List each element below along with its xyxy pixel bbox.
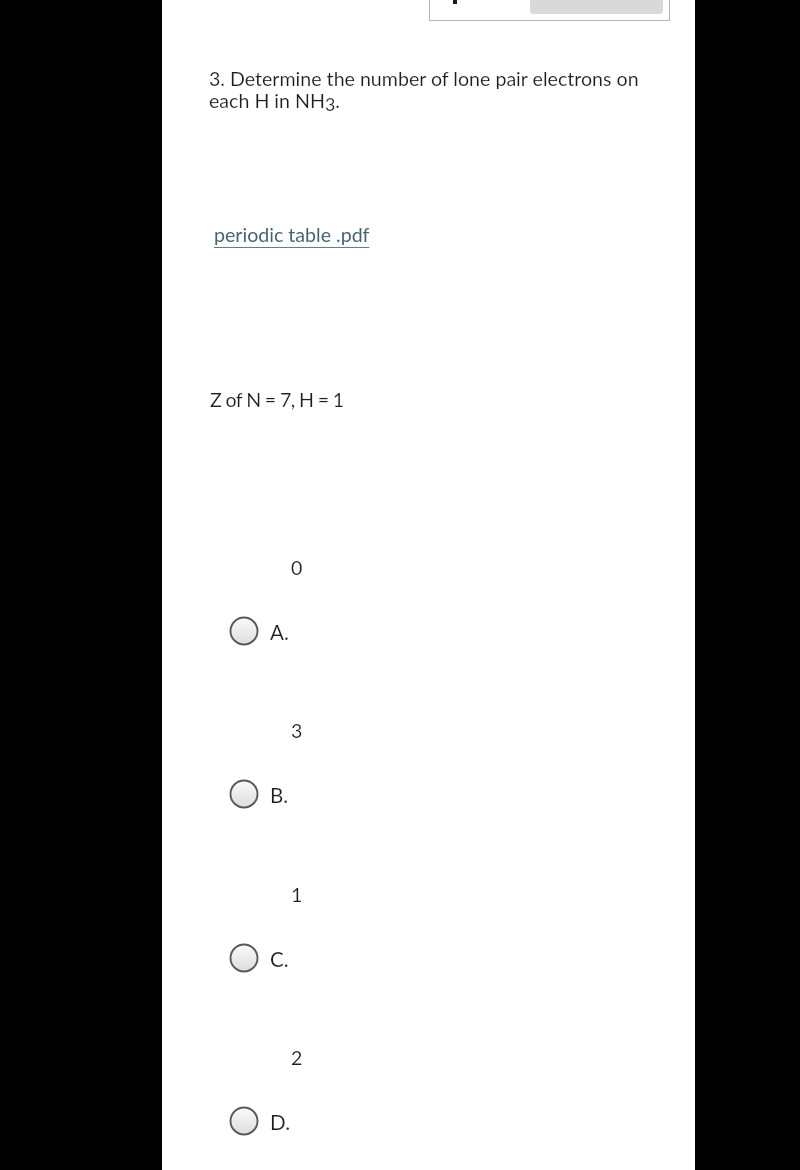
button[interactable]: Select answer: [229, 778, 301, 810]
other: Select answer: [229, 943, 259, 973]
staticText: A.: [270, 620, 289, 645]
button[interactable]: 3: [291, 719, 303, 743]
other: Select answer: [229, 616, 259, 646]
other: Select answer: [229, 779, 259, 809]
button[interactable]: 1: [291, 883, 303, 907]
staticText: D.: [270, 1110, 291, 1135]
button[interactable]: Previous question card: [429, 0, 670, 21]
button[interactable]: 2: [291, 1046, 303, 1070]
staticText: B.: [270, 783, 289, 808]
staticText: C.: [270, 947, 289, 972]
staticText: 3. Determine the number of lone pair ele…: [209, 67, 654, 115]
other: Select answer: [229, 1106, 259, 1136]
button[interactable]: Select answer: [229, 942, 301, 974]
button[interactable]: Select answer: [229, 1105, 301, 1137]
button[interactable]: Select answer: [229, 615, 301, 647]
button[interactable]: periodic table .pdf: [214, 223, 370, 247]
button[interactable]: 0: [291, 556, 303, 580]
staticText: Z of N = 7, H = 1: [210, 388, 344, 412]
staticText: periodic table .pdf: [214, 223, 370, 247]
